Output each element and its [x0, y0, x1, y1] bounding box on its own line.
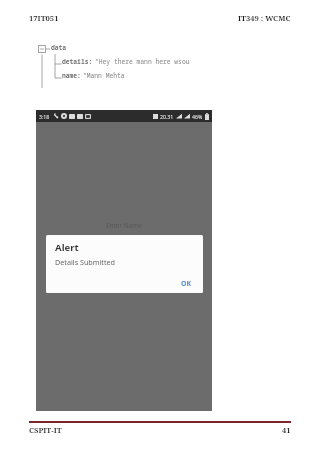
- staticText: "Mann Mehta: [83, 71, 125, 80]
- staticText: 17IT051: [29, 13, 59, 23]
- staticText: OK: [181, 279, 192, 288]
- staticText: "Hey there mann here wsou: [95, 57, 190, 66]
- other: Call in progress: [53, 113, 59, 119]
- staticText: 3:18: [39, 113, 50, 120]
- staticText: name:: [62, 71, 81, 80]
- staticText: Enter Name: [106, 221, 142, 230]
- staticText: CSPIT-IT: [29, 425, 62, 435]
- staticText: Details Submitted: [55, 257, 115, 267]
- staticText: Alert: [55, 241, 79, 254]
- staticText: data: [51, 43, 67, 52]
- button[interactable]: OK: [176, 277, 197, 290]
- staticText: 46%: [192, 113, 203, 120]
- staticText: 20.31: [160, 113, 174, 120]
- staticText: IT349 : WCMC: [238, 13, 291, 23]
- staticText: details:: [62, 57, 93, 66]
- staticText: 41: [282, 425, 291, 435]
